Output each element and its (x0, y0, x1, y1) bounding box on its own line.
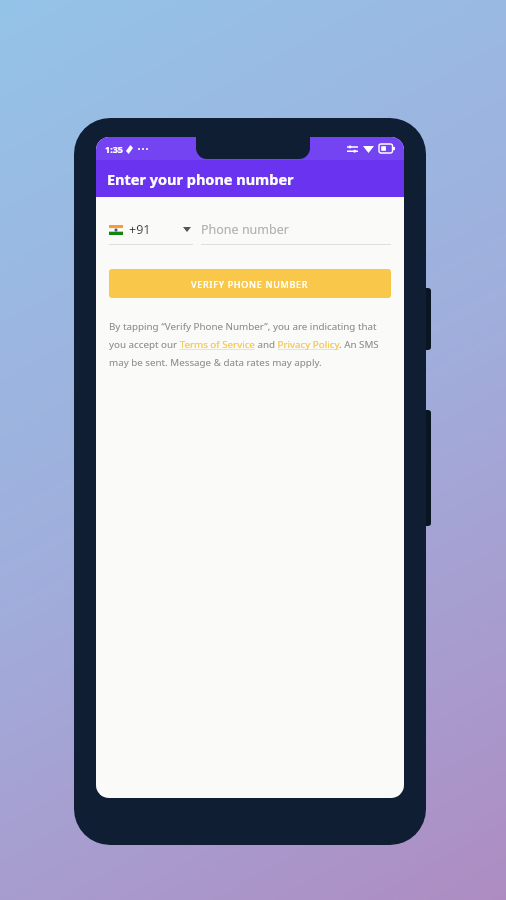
staticText: By tapping “Verify Phone Number”, you ar… (109, 320, 391, 369)
staticText: 1:35 (105, 143, 123, 155)
staticText: Enter your phone number (107, 169, 294, 189)
button[interactable]: VERIFY PHONE NUMBER (109, 269, 391, 298)
staticText: VERIFY PHONE NUMBER (191, 278, 309, 290)
staticText: +91 (129, 221, 151, 238)
button[interactable]: Phone number (201, 221, 391, 245)
button[interactable]: Select country code (109, 221, 193, 245)
staticText: Phone number (201, 221, 289, 238)
